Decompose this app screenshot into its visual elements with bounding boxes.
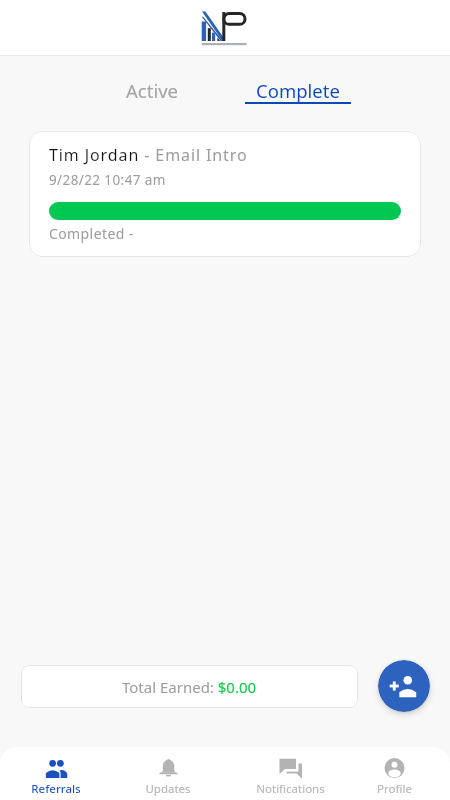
staticText: 9/28/22 10:47 am — [49, 171, 166, 189]
button[interactable]: Referrals — [0, 747, 112, 800]
staticText: Notifications — [256, 781, 325, 797]
staticText: Complete — [256, 78, 340, 103]
button[interactable]: Active — [79, 78, 225, 105]
staticText: Total Earned: $0.00 — [122, 677, 257, 697]
button[interactable]: Complete — [225, 78, 371, 105]
button[interactable]: Updates — [112, 747, 224, 800]
staticText: Updates — [145, 781, 191, 797]
button[interactable]: Add referral — [378, 660, 430, 712]
staticText: Active — [126, 78, 178, 103]
staticText: Profile — [377, 781, 412, 797]
staticText: Completed - — [49, 224, 134, 243]
button[interactable]: Tim Jordan - Email Intro — [29, 131, 421, 257]
button[interactable]: Profile — [337, 747, 450, 800]
button[interactable]: Total Earned: $0.00 — [21, 665, 358, 708]
button[interactable]: Notifications — [224, 747, 337, 800]
staticText: Referrals — [31, 781, 81, 797]
staticText: Tim Jordan - Email Intro — [49, 144, 248, 166]
